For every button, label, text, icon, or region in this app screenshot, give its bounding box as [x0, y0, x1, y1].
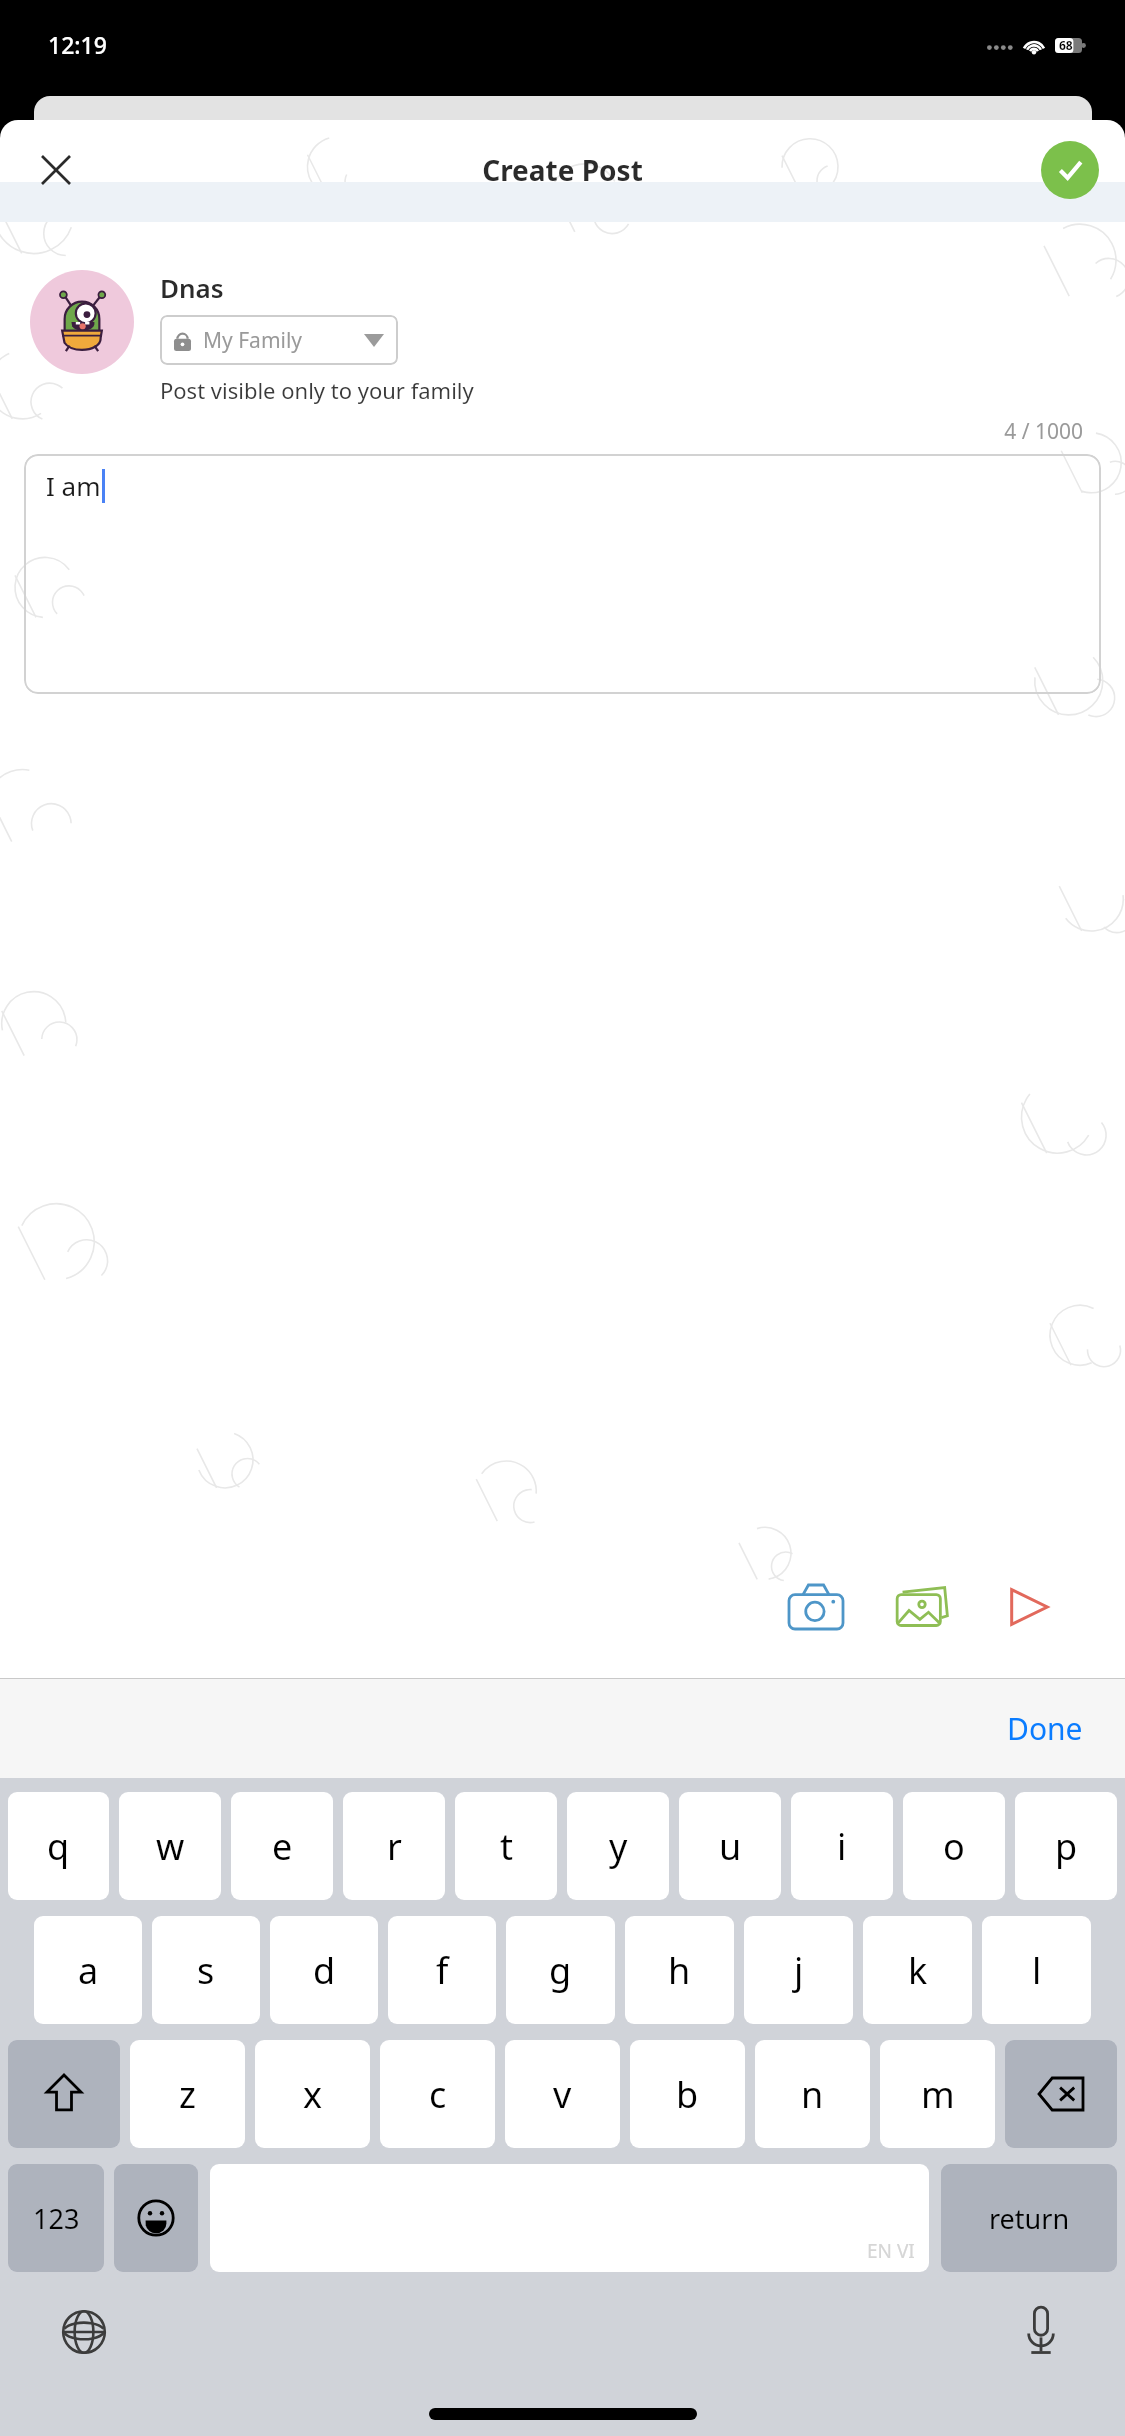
staticText: o [943, 1822, 965, 1871]
button[interactable]: d [270, 1916, 378, 2024]
staticText: a [78, 1946, 99, 1995]
button[interactable]: j [744, 1916, 853, 2024]
staticText: g [549, 1946, 572, 1995]
staticText: h [668, 1946, 691, 1995]
staticText: 4 / 1000 [0, 417, 1083, 446]
button[interactable]: f [388, 1916, 496, 2024]
staticText: v [553, 2070, 572, 2119]
staticText: w [156, 1822, 185, 1871]
button[interactable]: Video [991, 1570, 1065, 1644]
staticText: Done [1007, 1708, 1083, 1749]
button[interactable]: u [679, 1792, 781, 1900]
staticText: 123 [33, 2200, 80, 2237]
button[interactable]: Post [1041, 141, 1099, 199]
staticText: n [801, 2070, 824, 2119]
button[interactable]: 123 [8, 2164, 104, 2272]
button[interactable]: g [506, 1916, 615, 2024]
staticText: Dnas [160, 270, 224, 305]
button[interactable]: v [505, 2040, 620, 2148]
button[interactable]: t [455, 1792, 557, 1900]
button[interactable]: p [1015, 1792, 1117, 1900]
staticText: I am [46, 468, 101, 503]
button[interactable]: o [903, 1792, 1005, 1900]
staticText: 12:19 [48, 29, 107, 60]
staticText: u [719, 1822, 742, 1871]
staticText: d [313, 1946, 336, 1995]
button[interactable]: x [255, 2040, 370, 2148]
staticText: j [794, 1946, 804, 1995]
button[interactable]: Gallery [885, 1570, 959, 1644]
staticText: My Family [203, 326, 364, 355]
button[interactable]: b [630, 2040, 745, 2148]
staticText: Post visible only to your family [160, 375, 474, 405]
button[interactable]: a [34, 1916, 142, 2024]
staticText: z [179, 2070, 196, 2119]
button[interactable]: Shift [8, 2040, 120, 2148]
button[interactable]: Camera [779, 1570, 853, 1644]
button[interactable]: Change language [48, 2296, 120, 2368]
staticText: q [47, 1822, 70, 1871]
staticText: EN VI [867, 2238, 915, 2264]
button[interactable]: c [380, 2040, 495, 2148]
button[interactable]: q [8, 1792, 109, 1900]
button[interactable]: Close [30, 144, 82, 196]
staticText: i [837, 1822, 847, 1871]
button[interactable]: i [791, 1792, 893, 1900]
staticText: k [908, 1946, 928, 1995]
button[interactable]: Dictate [1005, 2296, 1077, 2368]
staticText: Create Post [482, 151, 643, 189]
button[interactable]: m [880, 2040, 995, 2148]
staticText: return [989, 2200, 1070, 2237]
button[interactable]: n [755, 2040, 870, 2148]
staticText: p [1055, 1822, 1078, 1871]
staticText: x [303, 2070, 323, 2119]
staticText: r [387, 1822, 402, 1871]
button[interactable]: z [130, 2040, 245, 2148]
staticText: y [609, 1822, 628, 1871]
staticText: l [1032, 1946, 1042, 1995]
staticText: 68 [1059, 37, 1073, 53]
button[interactable]: y [567, 1792, 669, 1900]
button[interactable]: w [119, 1792, 221, 1900]
button[interactable]: return [941, 2164, 1117, 2272]
staticText: t [500, 1822, 513, 1871]
staticText: m [921, 2070, 955, 2119]
staticText: s [197, 1946, 215, 1995]
button[interactable]: Backspace [1005, 2040, 1117, 2148]
button[interactable]: h [625, 1916, 734, 2024]
button[interactable]: Done [985, 1694, 1105, 1763]
button[interactable]: Emoji [114, 2164, 198, 2272]
staticText: f [436, 1946, 449, 1995]
button[interactable]: My Family [160, 315, 398, 365]
button[interactable]: s [152, 1916, 260, 2024]
button[interactable]: l [982, 1916, 1091, 2024]
button[interactable]: e [231, 1792, 333, 1900]
button[interactable]: k [863, 1916, 972, 2024]
button[interactable]: r [343, 1792, 445, 1900]
staticText: b [676, 2070, 699, 2119]
button[interactable]: I am [24, 454, 1101, 694]
staticText: c [429, 2070, 447, 2119]
staticText: e [272, 1822, 293, 1871]
